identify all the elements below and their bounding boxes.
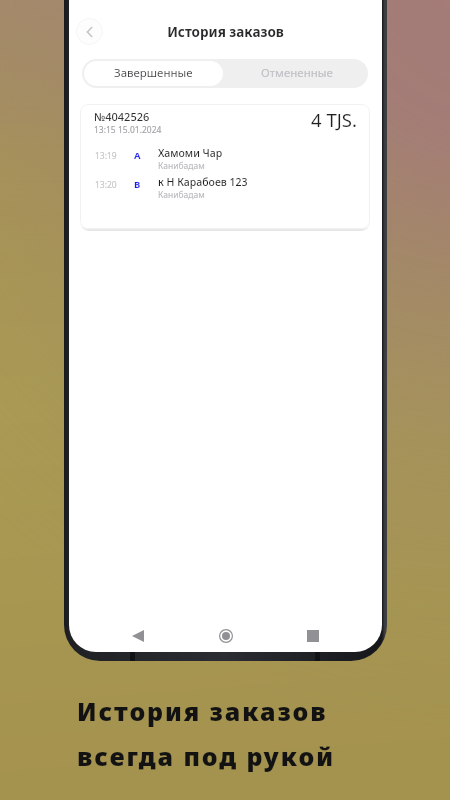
button[interactable]: Главная (208, 620, 244, 652)
staticText: B (134, 178, 141, 191)
button[interactable]: Завершенные (84, 61, 223, 86)
staticText: №4042526 (94, 109, 150, 124)
button[interactable]: Назад (120, 620, 156, 652)
staticText: Хамоми Чар (158, 146, 223, 160)
button[interactable]: №4042526 (80, 104, 370, 229)
staticText: 13:15 15.01.2024 (94, 124, 162, 136)
staticText: к Н Карабоев 123 (158, 175, 248, 189)
staticText: История заказов (77, 694, 328, 728)
staticText: 13:20 (95, 179, 117, 191)
staticText: A (134, 149, 141, 162)
staticText: Канибадам (158, 160, 205, 172)
staticText: Завершенные (114, 65, 193, 81)
staticText: 13:19 (95, 150, 117, 162)
button[interactable]: Последние приложения (295, 620, 331, 652)
button[interactable]: Отмененные (225, 59, 368, 88)
staticText: всегда под рукой (77, 739, 335, 773)
staticText: Канибадам (158, 189, 205, 201)
staticText: История заказов (69, 23, 382, 41)
staticText: 4 TJS. (311, 107, 357, 132)
button[interactable]: Назад (76, 18, 103, 45)
staticText: Отмененные (261, 65, 333, 81)
